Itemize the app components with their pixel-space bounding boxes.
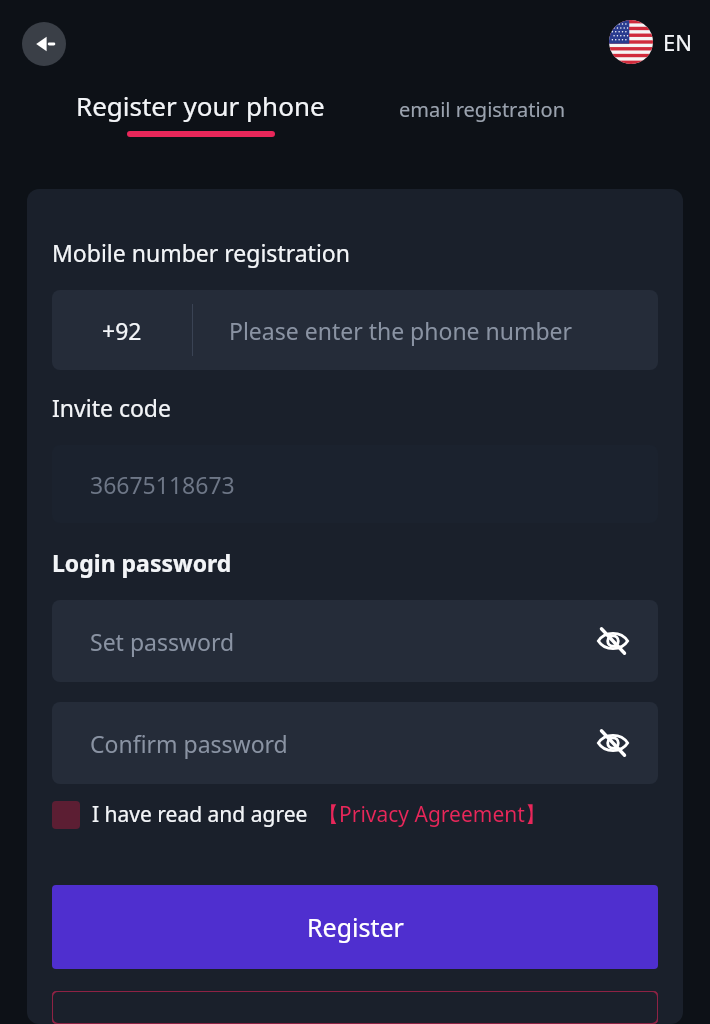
button[interactable]: Set password [52,600,658,682]
button[interactable]: Show password [592,620,634,662]
button[interactable]: Back [22,22,66,66]
staticText: Register [307,910,404,944]
staticText: 【Privacy Agreement】 [318,800,546,829]
staticText: Confirm password [90,728,592,759]
staticText: 36675118673 [90,469,235,500]
staticText: Login password [52,547,232,578]
button[interactable]: Register your phone [76,88,325,137]
staticText: I have read and agree [92,800,308,829]
staticText: Please enter the phone number [229,315,573,346]
button[interactable]: Register [52,885,658,969]
button[interactable]: Confirm password [52,702,658,784]
button[interactable] [52,991,658,1024]
staticText: EN [663,27,692,57]
button[interactable]: 36675118673 [52,445,658,523]
button[interactable]: +92 [52,290,658,370]
staticText: Invite code [52,392,171,423]
button[interactable]: EN [609,20,692,64]
button[interactable]: email registration [399,96,566,123]
staticText: +92 [102,315,142,346]
button[interactable]: Show password [592,722,634,764]
staticText: Mobile number registration [52,237,350,268]
button[interactable]: I have read and agree [52,800,658,829]
staticText: Register your phone [76,88,325,123]
staticText: Set password [90,626,592,657]
